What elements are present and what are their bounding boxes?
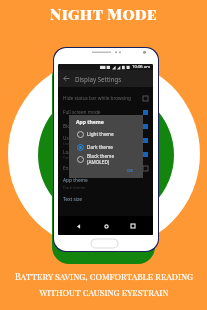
staticText: 10:06 am	[132, 64, 151, 70]
button[interactable]: Enable text reflow	[58, 161, 153, 175]
button[interactable]: Block images	[58, 119, 153, 133]
button[interactable]: Black theme	[69, 153, 143, 165]
staticText: Light theme	[87, 131, 114, 137]
staticText: Use default system font	[63, 141, 106, 146]
button[interactable]: Light theme	[69, 128, 143, 140]
button[interactable]: Full screen mode	[58, 105, 153, 119]
staticText: Block images	[63, 123, 93, 129]
staticText: Black theme	[87, 153, 115, 159]
staticText: App theme	[63, 177, 88, 184]
button[interactable]: Dark theme	[69, 141, 143, 153]
button[interactable]: Back	[70, 218, 86, 234]
button[interactable]: App theme	[58, 177, 153, 190]
staticText: (AMOLED)	[87, 159, 110, 165]
staticText: Load text only	[63, 149, 94, 155]
button[interactable]: Back	[58, 70, 75, 87]
button[interactable]: Load text only	[58, 147, 153, 161]
button[interactable]: Hide status bar while browsing	[58, 91, 153, 105]
button[interactable]: Recent apps	[125, 218, 141, 234]
button[interactable]: Use system font	[58, 133, 153, 147]
staticText: Faster loading	[63, 155, 89, 160]
staticText: Full screen mode	[63, 109, 101, 115]
button[interactable]: Home	[98, 218, 114, 234]
staticText: Hide status bar while browsing	[63, 95, 131, 101]
staticText: Text size	[63, 196, 82, 203]
staticText: App theme	[76, 119, 104, 126]
staticText: Night Mode	[0, 3, 207, 24]
staticText: Battery saving, comfortable reading	[15, 270, 193, 282]
button[interactable]: OK	[125, 166, 136, 176]
staticText: Display Settings	[75, 75, 122, 83]
staticText: Dark theme	[63, 185, 86, 190]
staticText: without causing eyestrain	[39, 286, 169, 298]
staticText: Enable text reflow	[63, 165, 103, 171]
staticText: OK	[127, 168, 134, 174]
staticText: Dark theme	[87, 144, 113, 150]
staticText: Use system font	[63, 135, 99, 141]
